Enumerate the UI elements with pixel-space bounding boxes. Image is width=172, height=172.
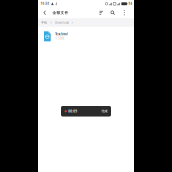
button[interactable]: Back [39, 7, 50, 18]
staticText: 结束 [101, 109, 107, 113]
button[interactable]: Sort [95, 7, 107, 18]
staticText: 00:09 [68, 109, 77, 113]
button[interactable]: More options [118, 7, 130, 18]
staticText: 94 [128, 2, 132, 5]
staticText: 全部文件 [52, 10, 68, 15]
button[interactable]: Search [107, 7, 118, 18]
staticText: 10:50 [40, 2, 49, 5]
staticText: Download [55, 21, 69, 24]
button[interactable]: 手机 [41, 21, 47, 24]
button[interactable]: Download [55, 21, 69, 24]
staticText: 1.5KB [55, 37, 64, 40]
staticText: Test.html [55, 32, 68, 36]
button[interactable]: Test.html [38, 27, 134, 46]
staticText: 手机 [41, 21, 47, 24]
